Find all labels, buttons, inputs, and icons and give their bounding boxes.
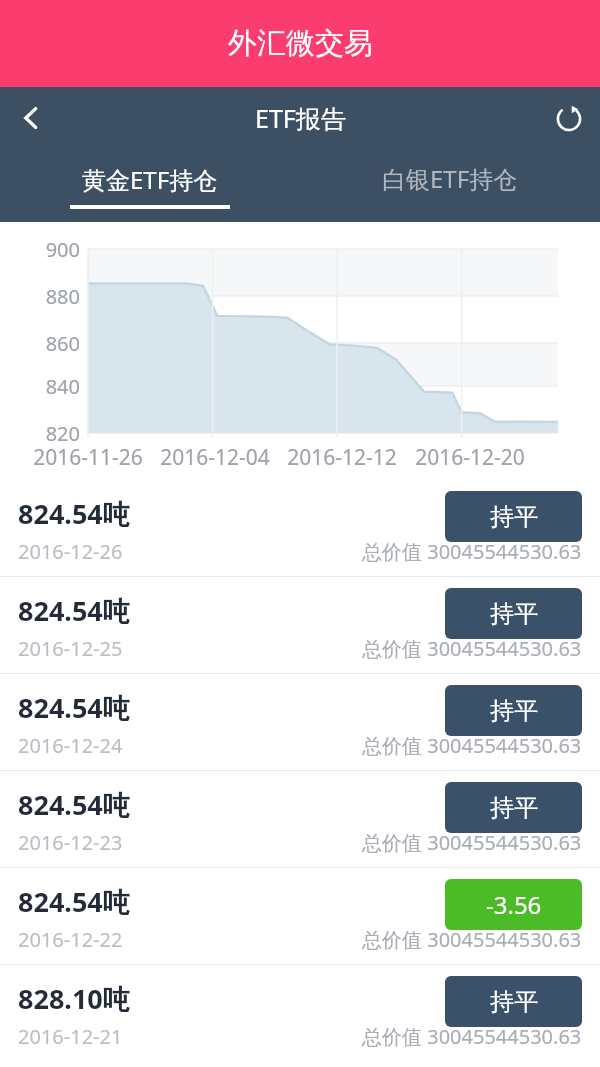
staticText: 840 — [32, 373, 80, 400]
staticText: 总价值 30045544530.63 — [362, 1023, 582, 1050]
staticText: ETF报告 — [255, 101, 346, 135]
button[interactable]: 828.10吨 — [0, 965, 600, 1061]
staticText: 880 — [32, 283, 80, 310]
button[interactable]: 持平 — [445, 685, 582, 736]
staticText: 持平 — [490, 599, 538, 629]
staticText: 2016-11-26 — [28, 443, 148, 472]
staticText: 824.54吨 — [18, 786, 130, 823]
button[interactable]: 824.54吨 — [0, 868, 600, 964]
staticText: 2016-12-21 — [18, 1023, 123, 1050]
button[interactable]: -3.56 — [445, 879, 582, 930]
staticText: 2016-12-24 — [18, 732, 123, 759]
staticText: 900 — [32, 236, 80, 263]
staticText: 持平 — [490, 502, 538, 532]
staticText: 总价值 30045544530.63 — [362, 635, 582, 662]
staticText: 黄金ETF持仓 — [82, 163, 218, 196]
staticText: 持平 — [490, 696, 538, 726]
button[interactable]: 824.54吨 — [0, 577, 600, 673]
button[interactable]: 白银ETF持仓 — [300, 149, 600, 222]
button[interactable]: Refresh — [538, 87, 600, 149]
button[interactable]: 824.54吨 — [0, 480, 600, 576]
staticText: 824.54吨 — [18, 689, 130, 726]
staticText: 824.54吨 — [18, 495, 130, 532]
staticText: 2016-12-23 — [18, 829, 123, 856]
staticText: 824.54吨 — [18, 592, 130, 629]
staticText: 2016-12-25 — [18, 635, 123, 662]
staticText: 总价值 30045544530.63 — [362, 926, 582, 953]
staticText: 持平 — [490, 793, 538, 823]
staticText: 2016-12-12 — [282, 443, 402, 472]
staticText: 860 — [32, 330, 80, 357]
staticText: 820 — [32, 420, 80, 447]
staticText: 2016-12-04 — [155, 443, 275, 472]
staticText: 824.54吨 — [18, 883, 130, 920]
staticText: 2016-12-26 — [18, 538, 123, 565]
button[interactable]: 持平 — [445, 976, 582, 1027]
button[interactable]: 黄金ETF持仓 — [0, 149, 300, 222]
staticText: 2016-12-22 — [18, 926, 123, 953]
staticText: 总价值 30045544530.63 — [362, 538, 582, 565]
button[interactable]: Back — [0, 87, 62, 149]
staticText: 外汇微交易 — [228, 25, 373, 62]
button[interactable]: 824.54吨 — [0, 674, 600, 770]
staticText: 白银ETF持仓 — [382, 162, 518, 195]
button[interactable]: 持平 — [445, 491, 582, 542]
staticText: 828.10吨 — [18, 980, 130, 1017]
staticText: 总价值 30045544530.63 — [362, 829, 582, 856]
staticText: -3.56 — [486, 888, 542, 921]
staticText: 持平 — [490, 987, 538, 1017]
button[interactable]: 持平 — [445, 588, 582, 639]
staticText: 2016-12-20 — [410, 443, 530, 472]
button[interactable]: 824.54吨 — [0, 771, 600, 867]
staticText: 总价值 30045544530.63 — [362, 732, 582, 759]
button[interactable]: 持平 — [445, 782, 582, 833]
